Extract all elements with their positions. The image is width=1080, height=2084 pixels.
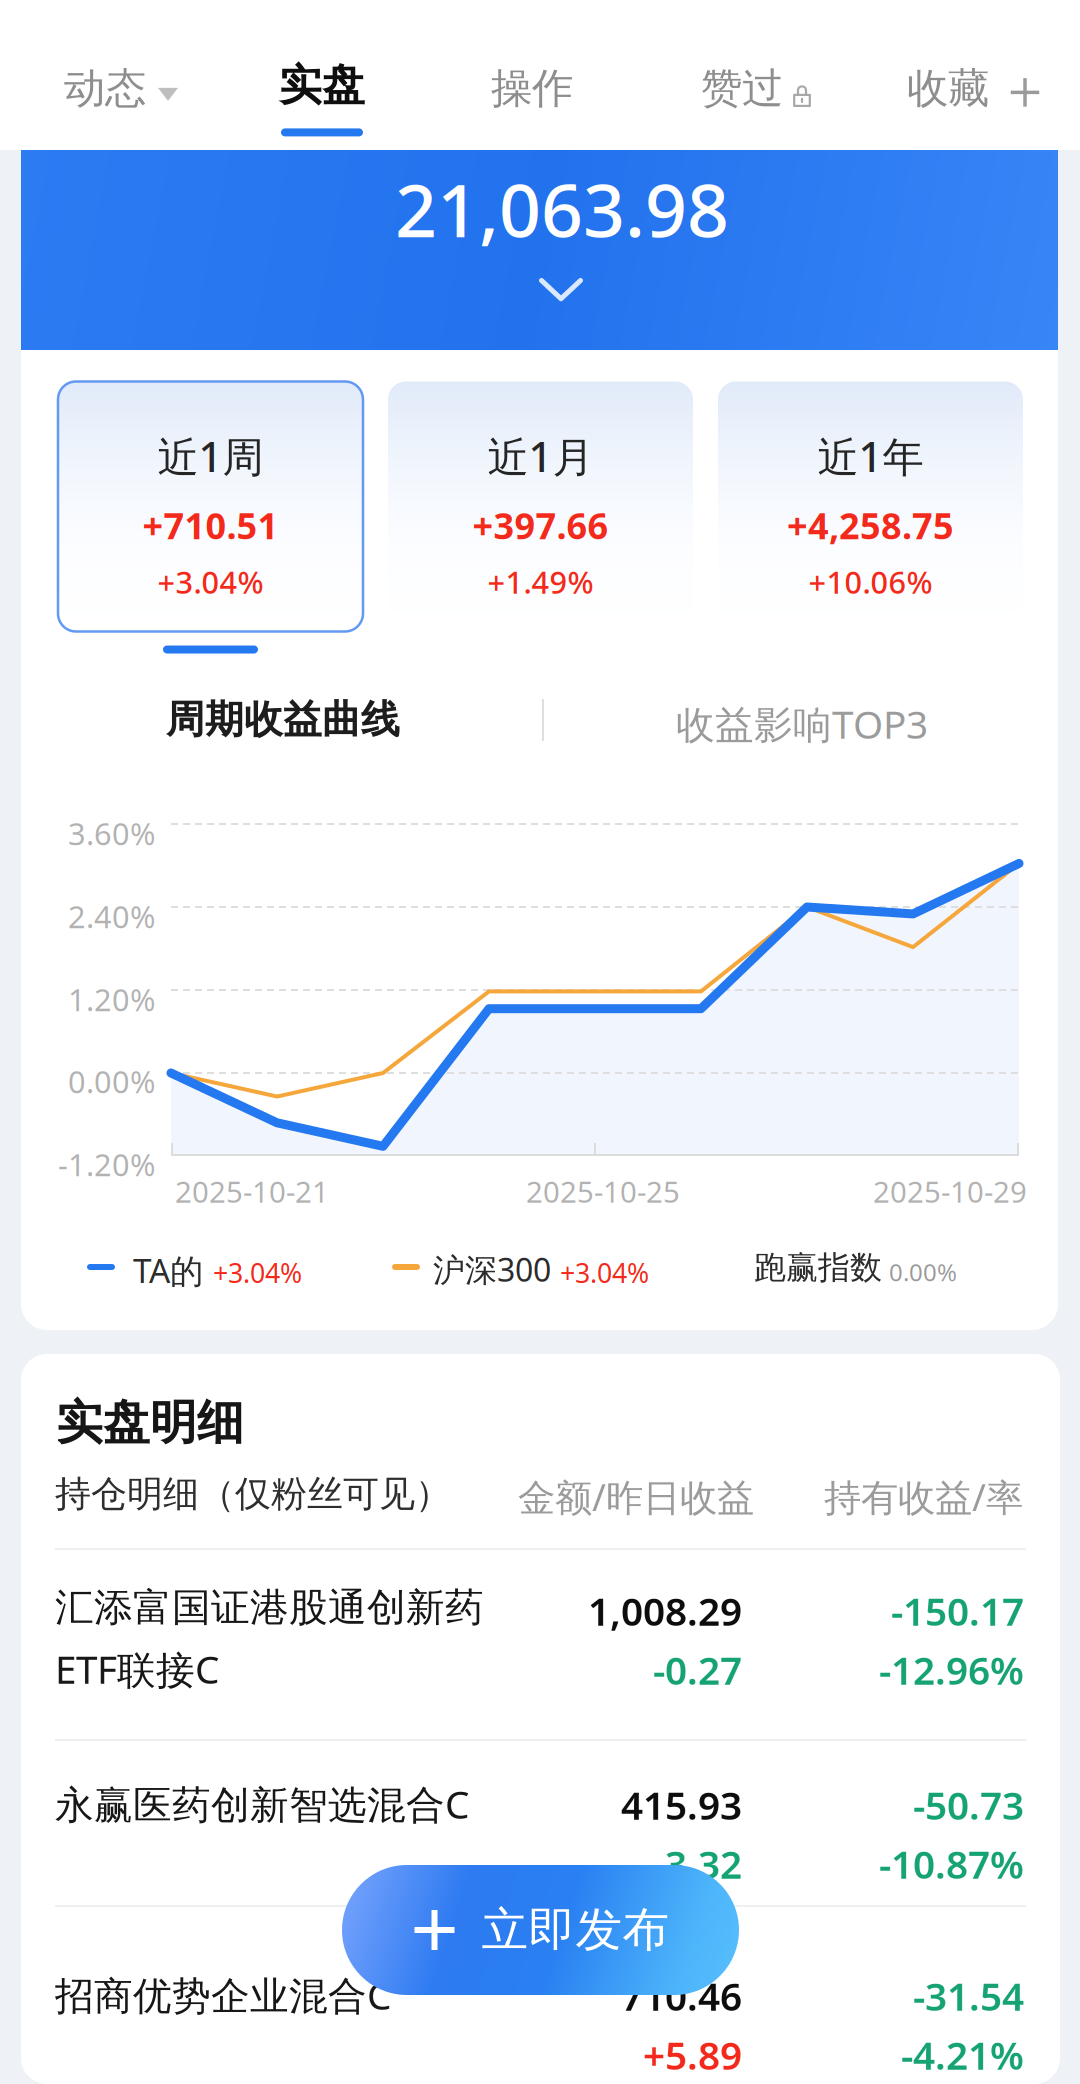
staticText: 汇添富国证港股通创新药 bbox=[55, 1584, 484, 1631]
staticText: 2025-10-25 bbox=[526, 1172, 680, 1211]
staticText: 0.00% bbox=[68, 1061, 155, 1102]
staticText: -3.32 bbox=[653, 1838, 742, 1889]
staticText: 永赢医药创新智选混合C bbox=[55, 1778, 469, 1829]
staticText: 近1年 bbox=[817, 428, 923, 483]
staticText: 近1周 bbox=[157, 428, 263, 483]
staticText: 3.60% bbox=[68, 813, 155, 854]
staticText: 赞过 bbox=[701, 63, 783, 114]
staticText: 立即发布 bbox=[481, 1901, 669, 1959]
staticText: 操作 bbox=[491, 63, 573, 114]
staticText: 周期收益曲线 bbox=[166, 696, 400, 743]
staticText: 710.46 bbox=[621, 1970, 742, 2021]
button[interactable]: 汇添富国证港股通创新药 bbox=[21, 1354, 1060, 2084]
staticText: +4,258.75 bbox=[787, 501, 954, 549]
staticText: 实盘明细 bbox=[56, 1394, 244, 1451]
staticText: -150.17 bbox=[891, 1585, 1024, 1636]
staticText: +5.89 bbox=[643, 2029, 742, 2080]
button[interactable]: 近1月 bbox=[388, 370, 693, 643]
staticText: 1.20% bbox=[68, 979, 155, 1020]
staticText: -31.54 bbox=[913, 1970, 1024, 2021]
staticText: 实盘 bbox=[279, 59, 365, 111]
staticText: 收益影响TOP3 bbox=[676, 698, 928, 749]
staticText: ETF联接C bbox=[55, 1643, 219, 1694]
staticText: -1.20% bbox=[58, 1144, 155, 1185]
button[interactable]: 收藏 bbox=[907, 63, 1041, 114]
staticText: 近1月 bbox=[487, 428, 593, 483]
button[interactable]: 周期收益曲线 bbox=[166, 696, 400, 743]
staticText: 2.40% bbox=[68, 896, 155, 937]
staticText: 跑赢指数 bbox=[754, 1248, 882, 1287]
staticText: -0.27 bbox=[653, 1644, 742, 1695]
staticText: 持仓明细（仅粉丝可见） bbox=[55, 1472, 451, 1516]
staticText: 持有收益/率 bbox=[824, 1472, 1023, 1522]
staticText: +710.51 bbox=[142, 501, 278, 549]
button[interactable]: 立即发布 bbox=[342, 1865, 739, 1995]
staticText: +3.04% bbox=[157, 561, 263, 602]
button[interactable]: 近1年 bbox=[718, 370, 1023, 643]
staticText: 沪深300 bbox=[433, 1248, 551, 1290]
staticText: TA的 bbox=[133, 1248, 203, 1292]
staticText: 招商优势企业混合C bbox=[55, 1969, 391, 2020]
staticText: +397.66 bbox=[472, 501, 608, 549]
staticText: -12.96% bbox=[879, 1644, 1024, 1695]
button[interactable]: 收益影响TOP3 bbox=[676, 698, 928, 749]
staticText: +3.04% bbox=[560, 1255, 649, 1290]
button[interactable]: 赞过 bbox=[701, 63, 812, 114]
staticText: 收藏 bbox=[907, 63, 989, 114]
staticText: -50.73 bbox=[913, 1779, 1024, 1830]
staticText: +3.04% bbox=[213, 1255, 302, 1290]
button[interactable]: 近1周 bbox=[58, 370, 363, 643]
button[interactable]: 实盘 bbox=[279, 59, 365, 119]
staticText: 415.93 bbox=[621, 1779, 742, 1830]
button[interactable]: 永赢医药创新智选混合C bbox=[21, 1354, 1060, 2084]
staticText: 2025-10-21 bbox=[175, 1172, 329, 1211]
staticText: 金额/昨日收益 bbox=[518, 1472, 754, 1522]
button[interactable]: 招商优势企业混合C bbox=[21, 1354, 1060, 2084]
staticText: 1,008.29 bbox=[588, 1585, 742, 1636]
staticText: -10.87% bbox=[879, 1838, 1024, 1889]
staticText: -4.21% bbox=[901, 2029, 1024, 2080]
staticText: +1.49% bbox=[487, 561, 593, 602]
staticText: +10.06% bbox=[808, 561, 932, 602]
staticText: 21,063.98 bbox=[395, 160, 729, 257]
staticText: 动态 bbox=[64, 63, 146, 114]
staticText: 0.00% bbox=[889, 1256, 957, 1288]
button[interactable]: 动态 bbox=[64, 63, 178, 114]
staticText: 2025-10-29 bbox=[873, 1172, 1027, 1211]
button[interactable]: 操作 bbox=[491, 63, 573, 114]
